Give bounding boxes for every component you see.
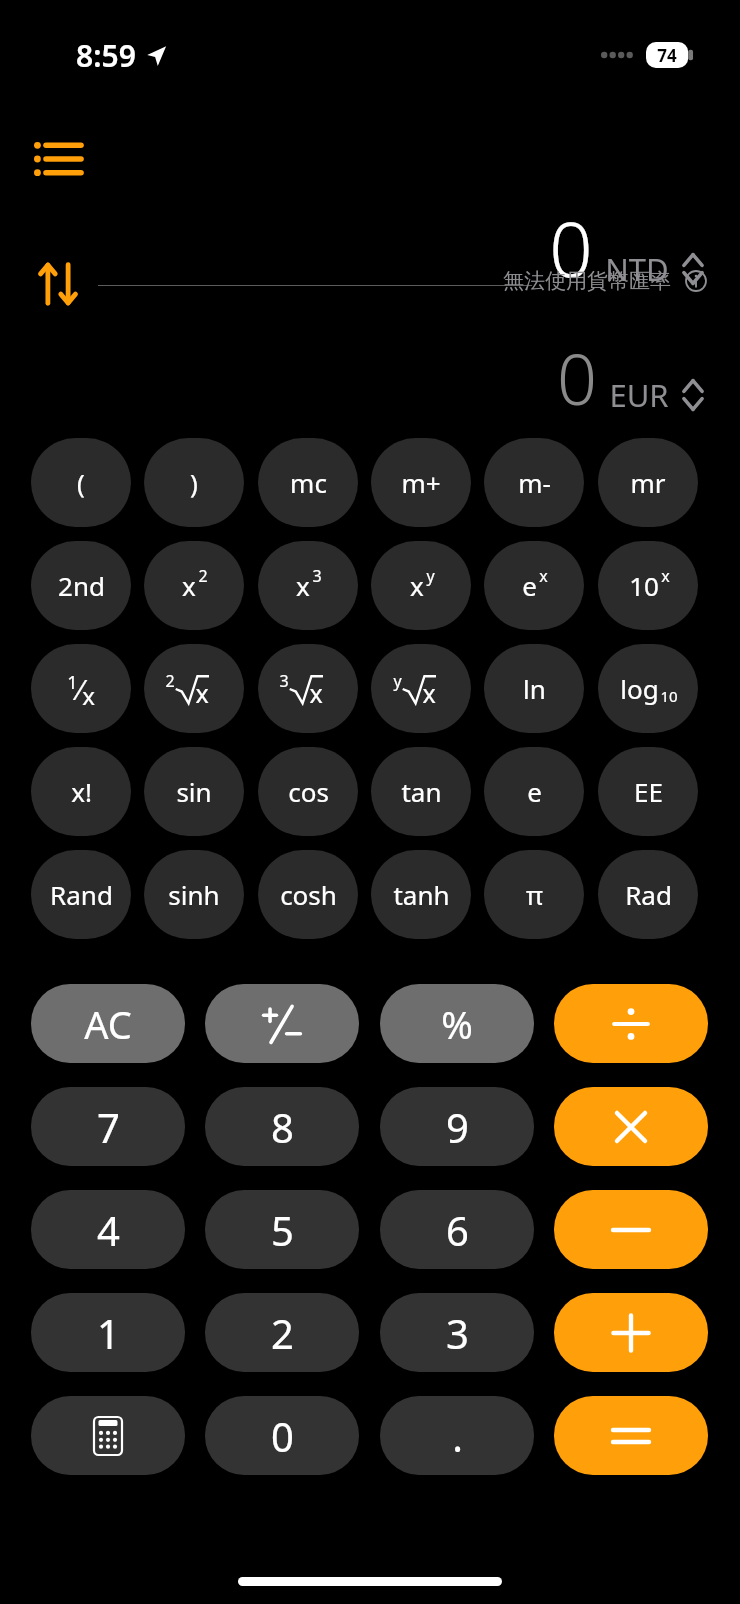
button[interactable]: Multiply bbox=[554, 1087, 708, 1166]
staticText: 9 bbox=[446, 1100, 469, 1154]
staticText: x bbox=[82, 679, 95, 712]
staticText: x bbox=[296, 568, 310, 603]
button[interactable]: Plus bbox=[554, 1293, 708, 1372]
button[interactable]: 10 bbox=[598, 541, 698, 630]
button[interactable]: AC bbox=[31, 984, 185, 1063]
button[interactable]: EE bbox=[598, 747, 698, 836]
button[interactable]: 6 bbox=[380, 1190, 534, 1269]
button[interactable]: π bbox=[484, 850, 584, 939]
staticText: y bbox=[426, 565, 435, 587]
button[interactable]: sin bbox=[144, 747, 244, 836]
button[interactable]: Info bbox=[684, 269, 708, 293]
staticText: x bbox=[539, 565, 548, 587]
button[interactable]: 2 bbox=[205, 1293, 359, 1372]
button[interactable]: ) bbox=[144, 438, 244, 527]
button[interactable]: mr bbox=[598, 438, 698, 527]
button[interactable]: log bbox=[598, 644, 698, 733]
button[interactable]: Divide bbox=[554, 984, 708, 1063]
button[interactable]: cos bbox=[258, 747, 358, 836]
button[interactable]: 8 bbox=[205, 1087, 359, 1166]
button[interactable]: y bbox=[371, 644, 471, 733]
button[interactable]: cosh bbox=[258, 850, 358, 939]
button[interactable]: ( bbox=[31, 438, 131, 527]
staticText: e bbox=[527, 774, 542, 809]
staticText: 6 bbox=[446, 1203, 469, 1257]
button[interactable]: 1 bbox=[31, 1293, 185, 1372]
button[interactable]: 0 bbox=[205, 1396, 359, 1475]
staticText: 4 bbox=[97, 1203, 120, 1257]
staticText: 0 bbox=[557, 330, 597, 425]
staticText: ( bbox=[77, 465, 85, 500]
button[interactable]: m+ bbox=[371, 438, 471, 527]
button[interactable]: 1 bbox=[31, 644, 131, 733]
staticText: x bbox=[309, 676, 323, 710]
staticText: tan bbox=[401, 774, 442, 809]
button[interactable]: x bbox=[144, 541, 244, 630]
staticText: sin bbox=[176, 774, 212, 809]
staticText: 5 bbox=[271, 1203, 294, 1257]
staticText: ) bbox=[190, 465, 198, 500]
staticText: tanh bbox=[393, 877, 450, 912]
button[interactable]: x bbox=[371, 541, 471, 630]
button[interactable]: History bbox=[31, 132, 85, 186]
button[interactable]: 9 bbox=[380, 1087, 534, 1166]
button[interactable]: % bbox=[380, 984, 534, 1063]
button[interactable]: m- bbox=[484, 438, 584, 527]
button[interactable]: . bbox=[380, 1396, 534, 1475]
button[interactable]: 2 bbox=[144, 644, 244, 733]
staticText: m- bbox=[518, 465, 551, 500]
staticText: % bbox=[441, 998, 473, 1050]
button[interactable]: mc bbox=[258, 438, 358, 527]
staticText: m+ bbox=[401, 465, 441, 500]
staticText: 8:59 bbox=[76, 35, 136, 76]
button[interactable]: e bbox=[484, 541, 584, 630]
button[interactable]: 5 bbox=[205, 1190, 359, 1269]
button[interactable]: Rand bbox=[31, 850, 131, 939]
button[interactable]: x! bbox=[31, 747, 131, 836]
staticText: mr bbox=[630, 465, 666, 500]
staticText: 1 bbox=[97, 1306, 120, 1360]
staticText: 3 bbox=[446, 1306, 469, 1360]
staticText: x! bbox=[71, 774, 92, 809]
button[interactable]: e bbox=[484, 747, 584, 836]
button[interactable]: 3 bbox=[380, 1293, 534, 1372]
button[interactable]: Calculator mode bbox=[31, 1396, 185, 1475]
button[interactable]: Swap currencies bbox=[30, 256, 86, 312]
staticText: x bbox=[661, 565, 670, 587]
staticText: 8 bbox=[271, 1100, 294, 1154]
button[interactable]: EUR bbox=[609, 374, 706, 416]
button[interactable]: Rad bbox=[598, 850, 698, 939]
staticText: 0 bbox=[271, 1409, 294, 1463]
staticText: EE bbox=[634, 774, 663, 809]
staticText: x bbox=[422, 676, 436, 710]
button[interactable]: 2nd bbox=[31, 541, 131, 630]
staticText: NTD bbox=[605, 248, 669, 290]
staticText: Rad bbox=[625, 877, 672, 912]
staticText: ln bbox=[523, 671, 546, 706]
button[interactable]: ln bbox=[484, 644, 584, 733]
staticText: x bbox=[195, 676, 209, 710]
button[interactable]: NTD bbox=[605, 248, 706, 290]
staticText: cosh bbox=[280, 877, 337, 912]
staticText: x bbox=[410, 568, 424, 603]
staticText: Rand bbox=[50, 877, 113, 912]
button[interactable]: 4 bbox=[31, 1190, 185, 1269]
button[interactable]: x bbox=[258, 541, 358, 630]
staticText: 2 bbox=[271, 1306, 294, 1360]
staticText: EUR bbox=[609, 374, 669, 416]
staticText: . bbox=[452, 1409, 463, 1463]
button[interactable]: Equals bbox=[554, 1396, 708, 1475]
button[interactable]: Minus bbox=[554, 1190, 708, 1269]
button[interactable]: tan bbox=[371, 747, 471, 836]
button[interactable]: 3 bbox=[258, 644, 358, 733]
button[interactable]: tanh bbox=[371, 850, 471, 939]
staticText: cos bbox=[288, 774, 329, 809]
staticText: 3 bbox=[312, 565, 322, 587]
button[interactable]: 7 bbox=[31, 1087, 185, 1166]
staticText: mc bbox=[290, 465, 327, 500]
button[interactable]: sinh bbox=[144, 850, 244, 939]
button[interactable]: Plus minus bbox=[205, 984, 359, 1063]
staticText: AC bbox=[84, 998, 132, 1050]
staticText: 1 bbox=[67, 670, 78, 695]
staticText: y bbox=[393, 670, 402, 692]
